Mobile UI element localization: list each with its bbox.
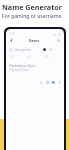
button[interactable]: Previous: [38, 79, 44, 85]
staticText: Any gender: [15, 48, 32, 52]
staticText: Name Generator: [2, 2, 62, 12]
staticText: Names: [29, 39, 40, 43]
button[interactable]: Back: [8, 37, 15, 44]
button[interactable]: Share: [56, 79, 62, 85]
staticText: 1-5: [9, 55, 13, 59]
staticText: 9:41: [9, 32, 15, 36]
button[interactable]: Copy: [50, 79, 56, 85]
button[interactable]: Refresh: [44, 79, 50, 85]
staticText: 6-9: [27, 55, 31, 59]
staticText: 10+: [45, 55, 50, 59]
staticText: Nightveil Orion: [9, 68, 29, 72]
button[interactable]: Settings: [55, 37, 62, 44]
staticText: For gaming or username.: [2, 13, 63, 20]
staticText: Shadowbane Kyrel: [9, 64, 36, 68]
